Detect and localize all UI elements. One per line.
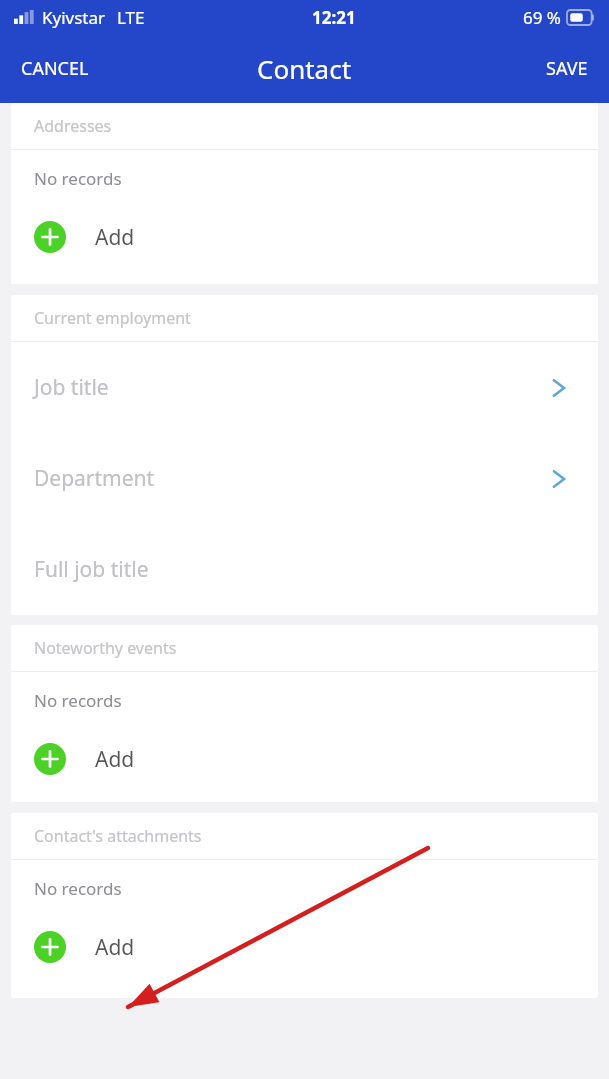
staticText: SAVE [546, 56, 588, 81]
staticText: No records [34, 167, 122, 190]
staticText: Department [34, 464, 544, 493]
button[interactable]: Department [11, 433, 598, 524]
staticText: Add [95, 745, 135, 774]
staticText: LTE [117, 6, 145, 29]
staticText: Kyivstar [42, 6, 106, 29]
button[interactable]: Add [11, 916, 598, 978]
staticText: Full job title [34, 555, 574, 584]
staticText: No records [34, 877, 122, 900]
staticText: 69 % [523, 6, 561, 29]
button[interactable]: Add [11, 728, 598, 790]
button[interactable]: SAVE [525, 46, 609, 91]
staticText: Contact [257, 51, 352, 86]
staticText: 12:21 [312, 6, 356, 29]
staticText: Addresses [34, 115, 112, 137]
staticText: Current employment [34, 307, 191, 329]
button[interactable]: Job title [11, 342, 598, 433]
staticText: CANCEL [21, 56, 89, 81]
staticText: Add [95, 933, 135, 962]
button[interactable]: Add [11, 206, 598, 268]
staticText: Add [95, 223, 135, 252]
staticText: Noteworthy events [34, 637, 177, 659]
staticText: Job title [34, 373, 544, 402]
button[interactable]: Full job title [11, 524, 598, 615]
staticText: Contact's attachments [34, 825, 202, 847]
button[interactable]: CANCEL [0, 46, 110, 91]
staticText: No records [34, 689, 122, 712]
